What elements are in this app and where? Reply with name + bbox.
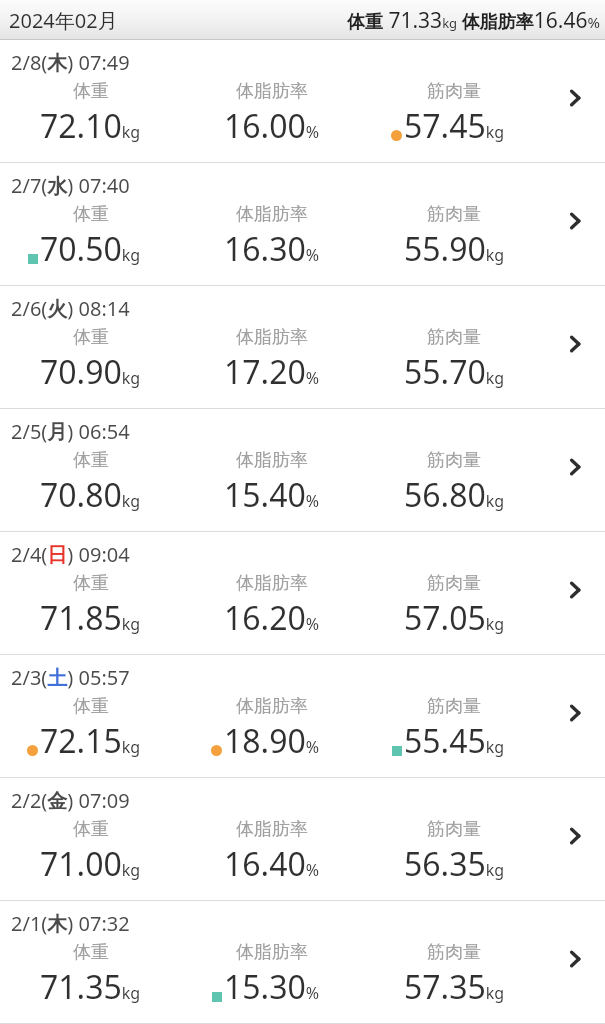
staticText: 70.80kg: [40, 473, 141, 517]
staticText: 2/6(火) 08:14: [11, 295, 130, 322]
staticText: 16.00%: [224, 104, 320, 148]
staticText: 15.40%: [224, 473, 320, 517]
staticText: 体脂肪率: [236, 449, 308, 472]
button[interactable]: 2/3(土) 05:57: [0, 655, 605, 778]
button[interactable]: 2/4(日) 09:04: [0, 532, 605, 655]
staticText: 55.70kg: [404, 350, 505, 394]
staticText: 57.45kg: [404, 104, 505, 148]
staticText: 17.20%: [224, 350, 320, 394]
staticText: 体重: [73, 572, 109, 595]
staticText: 72.15kg: [40, 719, 141, 763]
other: 詳細を表示: [545, 695, 605, 777]
staticText: 筋肉量: [427, 203, 481, 226]
staticText: 16.40%: [224, 842, 320, 886]
staticText: 71.35kg: [40, 965, 141, 1009]
staticText: 2/8(木) 07:49: [11, 49, 130, 76]
staticText: 体重: [73, 449, 109, 472]
staticText: 筋肉量: [427, 695, 481, 718]
other: 詳細を表示: [545, 941, 605, 1023]
other: 詳細を表示: [545, 818, 605, 900]
staticText: 体重: [73, 941, 109, 964]
staticText: 2/5(月) 06:54: [11, 418, 130, 445]
staticText: 55.45kg: [404, 719, 505, 763]
staticText: 体重: [73, 80, 109, 103]
staticText: 15.30%: [224, 965, 320, 1009]
staticText: 2/3(土) 05:57: [11, 664, 130, 691]
staticText: 2/1(木) 07:32: [11, 910, 130, 937]
staticText: 体重 71.33kg 体脂肪率16.46%: [347, 6, 600, 35]
staticText: 72.10kg: [40, 104, 141, 148]
staticText: 2/4(日) 09:04: [11, 541, 130, 568]
staticText: 筋肉量: [427, 449, 481, 472]
staticText: 16.20%: [224, 596, 320, 640]
staticText: 体脂肪率: [236, 572, 308, 595]
button[interactable]: 2/2(金) 07:09: [0, 778, 605, 901]
staticText: 筋肉量: [427, 818, 481, 841]
staticText: 体脂肪率: [236, 695, 308, 718]
staticText: 71.85kg: [40, 596, 141, 640]
staticText: 筋肉量: [427, 80, 481, 103]
staticText: 体重: [73, 326, 109, 349]
button[interactable]: 2/6(火) 08:14: [0, 286, 605, 409]
staticText: 体重: [73, 203, 109, 226]
other: 詳細を表示: [545, 449, 605, 531]
staticText: 体脂肪率: [236, 326, 308, 349]
staticText: 71.00kg: [40, 842, 141, 886]
button[interactable]: 2/5(月) 06:54: [0, 409, 605, 532]
staticText: 57.05kg: [404, 596, 505, 640]
staticText: 2/7(水) 07:40: [11, 172, 130, 199]
staticText: 筋肉量: [427, 941, 481, 964]
staticText: 体脂肪率: [236, 941, 308, 964]
button[interactable]: 2/7(水) 07:40: [0, 163, 605, 286]
staticText: 2/2(金) 07:09: [11, 787, 130, 814]
other: 詳細を表示: [545, 80, 605, 162]
other: 詳細を表示: [545, 572, 605, 654]
other: 詳細を表示: [545, 326, 605, 408]
staticText: 56.80kg: [404, 473, 505, 517]
button[interactable]: 2/1(木) 07:32: [0, 901, 605, 1024]
staticText: 体重: [73, 695, 109, 718]
staticText: 55.90kg: [404, 227, 505, 271]
staticText: 70.90kg: [40, 350, 141, 394]
other: 詳細を表示: [545, 203, 605, 285]
staticText: 筋肉量: [427, 326, 481, 349]
staticText: 16.30%: [224, 227, 320, 271]
staticText: 57.35kg: [404, 965, 505, 1009]
button[interactable]: 2/8(木) 07:49: [0, 40, 605, 163]
staticText: 2024年02月: [9, 7, 118, 34]
staticText: 筋肉量: [427, 572, 481, 595]
staticText: 体脂肪率: [236, 818, 308, 841]
staticText: 体重: [73, 818, 109, 841]
staticText: 18.90%: [224, 719, 320, 763]
staticText: 70.50kg: [40, 227, 141, 271]
staticText: 体脂肪率: [236, 203, 308, 226]
staticText: 体脂肪率: [236, 80, 308, 103]
staticText: 56.35kg: [404, 842, 505, 886]
